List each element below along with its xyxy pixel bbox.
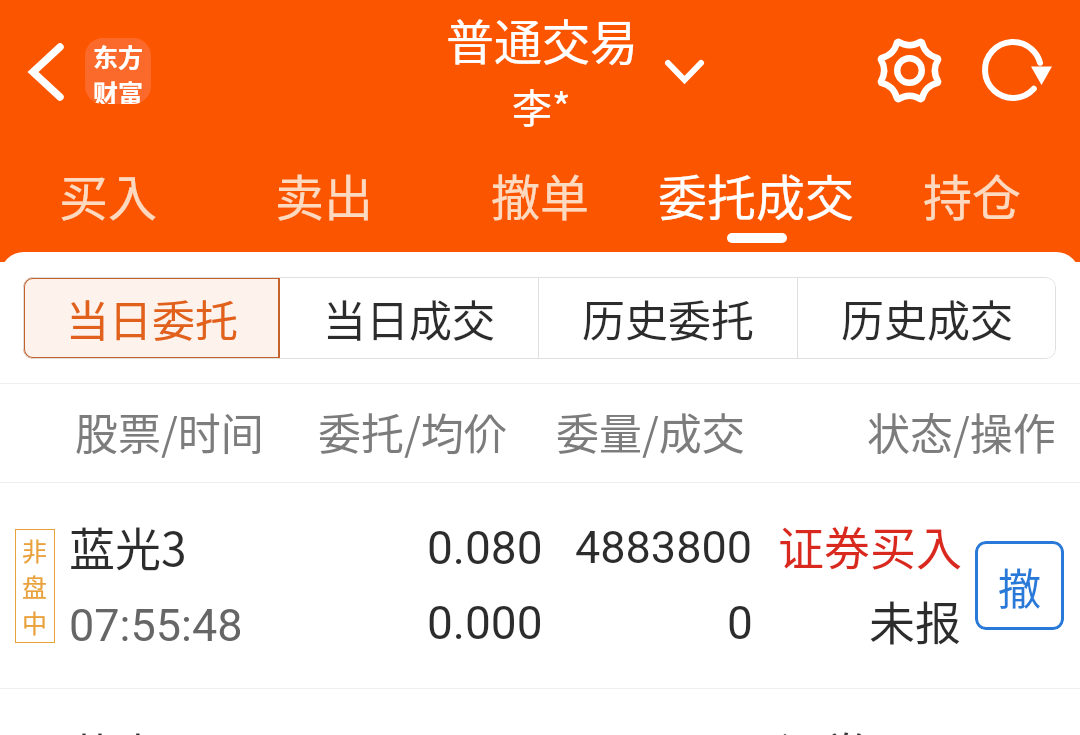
staticText: 财富 [93, 74, 144, 104]
button[interactable]: 当日成交 [280, 277, 538, 359]
staticText: 东方 [93, 38, 144, 74]
staticText: 非 [22, 532, 48, 568]
button[interactable]: 持仓 [864, 140, 1080, 262]
staticText: 委托成交 [658, 159, 855, 230]
staticText: 历史委托 [582, 287, 754, 349]
staticText: 0 [727, 596, 753, 650]
button[interactable]: 撤单 [432, 140, 648, 262]
staticText: 蓝光3 [69, 513, 187, 580]
button[interactable]: Refresh [980, 30, 1060, 110]
staticText: 普通交易 [446, 4, 639, 74]
staticText: 委量/成交 [556, 400, 745, 462]
staticText: 07:55:48 [69, 599, 243, 652]
button[interactable]: 撤 [975, 541, 1064, 630]
staticText: 状态/操作 [867, 400, 1056, 462]
button[interactable]: 当日委托 [23, 277, 280, 359]
staticText: 当日委托 [66, 287, 238, 349]
button[interactable]: Settings [869, 30, 949, 110]
staticText: 0.080 [427, 521, 543, 575]
staticText: 当日成交 [323, 287, 495, 349]
staticText: 0.000 [427, 596, 543, 650]
staticText: 委托/均价 [318, 400, 507, 462]
button[interactable]: 东方 [85, 38, 151, 104]
button[interactable]: 历史委托 [539, 277, 797, 359]
button[interactable]: Switch account [650, 37, 719, 106]
button[interactable]: 买入 [0, 140, 216, 262]
staticText: 4883800 [575, 521, 753, 574]
staticText: 中 [22, 604, 48, 640]
button[interactable]: 历史成交 [798, 277, 1056, 359]
staticText: 证券买入 [778, 718, 962, 735]
staticText: 股票/时间 [75, 400, 264, 462]
button[interactable]: Back [15, 38, 77, 106]
staticText: 蓝光3 [69, 719, 187, 735]
staticText: 历史成交 [841, 287, 1013, 349]
staticText: 撤 [998, 555, 1041, 617]
staticText: 证券买入 [778, 512, 962, 579]
staticText: 李* [512, 77, 571, 135]
button[interactable]: 卖出 [216, 140, 432, 262]
button[interactable]: 非 [0, 483, 1080, 688]
staticText: 撤单 [491, 159, 590, 230]
staticText: 买入 [59, 159, 158, 230]
staticText: 卖出 [275, 159, 374, 230]
staticText: 盘 [22, 568, 48, 604]
button[interactable]: 非 [0, 689, 1080, 735]
button[interactable]: 普通交易 [446, 4, 639, 74]
staticText: 持仓 [923, 159, 1022, 230]
staticText: 未报 [869, 587, 961, 654]
button[interactable]: 委托成交 [648, 140, 864, 262]
